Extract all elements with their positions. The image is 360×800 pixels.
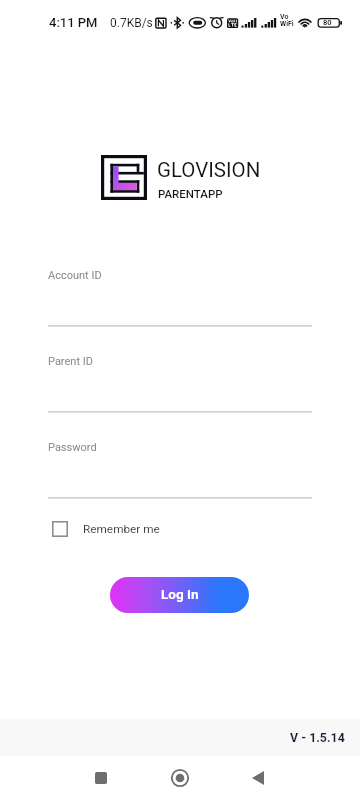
staticText: 0.7KB/s [110, 16, 153, 30]
staticText: PARENTAPP [158, 187, 223, 200]
staticText: 4:11 PM [49, 15, 98, 30]
staticText: Password [48, 441, 97, 454]
button[interactable]: Home [156, 756, 204, 800]
staticText: WiFi [280, 20, 294, 28]
button[interactable]: Log In [110, 577, 249, 613]
staticText: Account ID [48, 269, 102, 282]
staticText: 80 [323, 18, 332, 27]
button[interactable]: Back [234, 756, 282, 800]
staticText: Log In [161, 586, 199, 602]
staticText: V - 1.5.14 [290, 730, 345, 745]
staticText: GLOVISION [157, 158, 261, 182]
staticText: Parent ID [48, 355, 93, 368]
button[interactable]: Recent apps [77, 756, 125, 800]
button[interactable]: Remember me [52, 521, 160, 537]
staticText: Remember me [83, 522, 160, 536]
staticText: Vo [280, 13, 289, 21]
